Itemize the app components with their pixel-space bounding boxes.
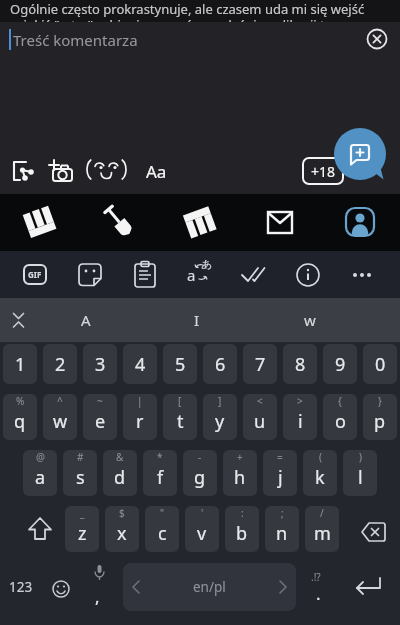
button[interactable] xyxy=(231,251,275,298)
button[interactable] xyxy=(344,562,396,612)
button[interactable]: ; xyxy=(265,506,299,552)
staticText: , xyxy=(95,585,100,608)
button[interactable] xyxy=(44,155,74,185)
staticText: " xyxy=(160,506,165,520)
button[interactable]: % xyxy=(3,394,37,440)
button[interactable] xyxy=(334,128,386,180)
staticText: t xyxy=(177,409,184,434)
button[interactable]: 8 xyxy=(283,344,317,384)
button[interactable]: [ xyxy=(163,394,197,440)
button[interactable]: 2 xyxy=(43,344,77,384)
button[interactable]: ' xyxy=(185,506,219,552)
button[interactable]: GIF xyxy=(13,251,57,298)
button[interactable]: ( xyxy=(303,450,337,496)
button[interactable]: - xyxy=(183,450,217,496)
button[interactable]: en/pl xyxy=(123,563,296,611)
staticText: w xyxy=(304,310,316,330)
button[interactable]: " xyxy=(145,506,179,552)
button[interactable]: ~ xyxy=(83,394,117,440)
button[interactable]: + xyxy=(223,450,257,496)
staticText: en/pl xyxy=(193,578,226,596)
button[interactable]: , xyxy=(82,562,120,612)
button[interactable]: 7 xyxy=(243,344,277,384)
button[interactable] xyxy=(340,506,400,552)
staticText: w jakiś "rytm" robienia czegoś np. właśn… xyxy=(10,16,348,34)
staticText: | xyxy=(137,394,143,408)
staticText: h xyxy=(234,465,246,490)
button[interactable]: { xyxy=(323,394,357,440)
button[interactable]: | xyxy=(123,394,157,440)
button[interactable] xyxy=(0,298,37,342)
button[interactable]: 4 xyxy=(123,344,157,384)
staticText: : xyxy=(241,506,244,520)
button[interactable] xyxy=(8,156,38,186)
button[interactable]: : xyxy=(225,506,259,552)
button[interactable]: +18 xyxy=(302,157,344,185)
staticText: 8 xyxy=(295,352,306,377)
staticText: 7 xyxy=(255,352,266,377)
button[interactable]: ) xyxy=(343,450,377,496)
button[interactable]: $ xyxy=(105,506,139,552)
button[interactable]: I xyxy=(151,298,243,342)
button[interactable]: ] xyxy=(203,394,237,440)
button[interactable] xyxy=(365,27,389,51)
button[interactable]: ^ xyxy=(43,394,77,440)
staticText: z xyxy=(78,521,87,546)
button[interactable] xyxy=(252,195,308,251)
button[interactable] xyxy=(172,195,228,251)
button[interactable]: / xyxy=(305,506,339,552)
button[interactable]: } xyxy=(363,394,397,440)
button[interactable]: > xyxy=(283,394,317,440)
button[interactable] xyxy=(92,195,148,251)
button[interactable]: 9 xyxy=(323,344,357,384)
staticText: ; xyxy=(281,506,284,520)
staticText: u xyxy=(254,409,266,434)
button[interactable]: Aa xyxy=(140,158,172,184)
button[interactable] xyxy=(123,251,167,298)
button[interactable] xyxy=(68,251,112,298)
button[interactable]: 0 xyxy=(363,344,397,384)
button[interactable]: a xyxy=(177,251,221,298)
staticText: 4 xyxy=(135,352,146,377)
staticText: i xyxy=(298,409,303,434)
button[interactable]: 1 xyxy=(3,344,37,384)
staticText: o xyxy=(335,409,346,434)
button[interactable]: 5 xyxy=(163,344,197,384)
staticText: k xyxy=(315,465,325,490)
staticText: & xyxy=(116,450,124,464)
staticText: 2 xyxy=(55,352,66,377)
staticText: 123 xyxy=(9,578,33,596)
button[interactable] xyxy=(86,158,128,184)
staticText: # xyxy=(77,450,84,464)
button[interactable] xyxy=(42,562,80,612)
button[interactable]: _ xyxy=(65,506,99,552)
button[interactable] xyxy=(286,251,330,298)
button[interactable]: 6 xyxy=(203,344,237,384)
staticText: w xyxy=(53,409,68,434)
staticText: + xyxy=(237,450,243,464)
staticText: I xyxy=(194,310,200,330)
staticText: j xyxy=(278,465,283,490)
button[interactable]: < xyxy=(243,394,277,440)
staticText: .!? xyxy=(311,570,321,584)
staticText: [ xyxy=(178,394,182,408)
button[interactable]: .!? xyxy=(300,562,338,612)
button[interactable]: 123 xyxy=(2,562,40,612)
button[interactable] xyxy=(0,506,60,552)
button[interactable] xyxy=(340,251,384,298)
button[interactable] xyxy=(332,195,388,251)
button[interactable] xyxy=(12,195,68,251)
staticText: q xyxy=(14,409,26,434)
staticText: @ xyxy=(36,450,45,464)
button[interactable]: @ xyxy=(23,450,57,496)
button[interactable]: 3 xyxy=(83,344,117,384)
button[interactable]: w xyxy=(264,298,356,342)
staticText: / xyxy=(320,506,324,520)
button[interactable]: = xyxy=(263,450,297,496)
staticText: 1 xyxy=(15,352,26,377)
button[interactable]: # xyxy=(63,450,97,496)
button[interactable]: * xyxy=(143,450,177,496)
button[interactable]: & xyxy=(103,450,137,496)
button[interactable]: A xyxy=(40,298,132,342)
staticText: * xyxy=(157,450,163,464)
